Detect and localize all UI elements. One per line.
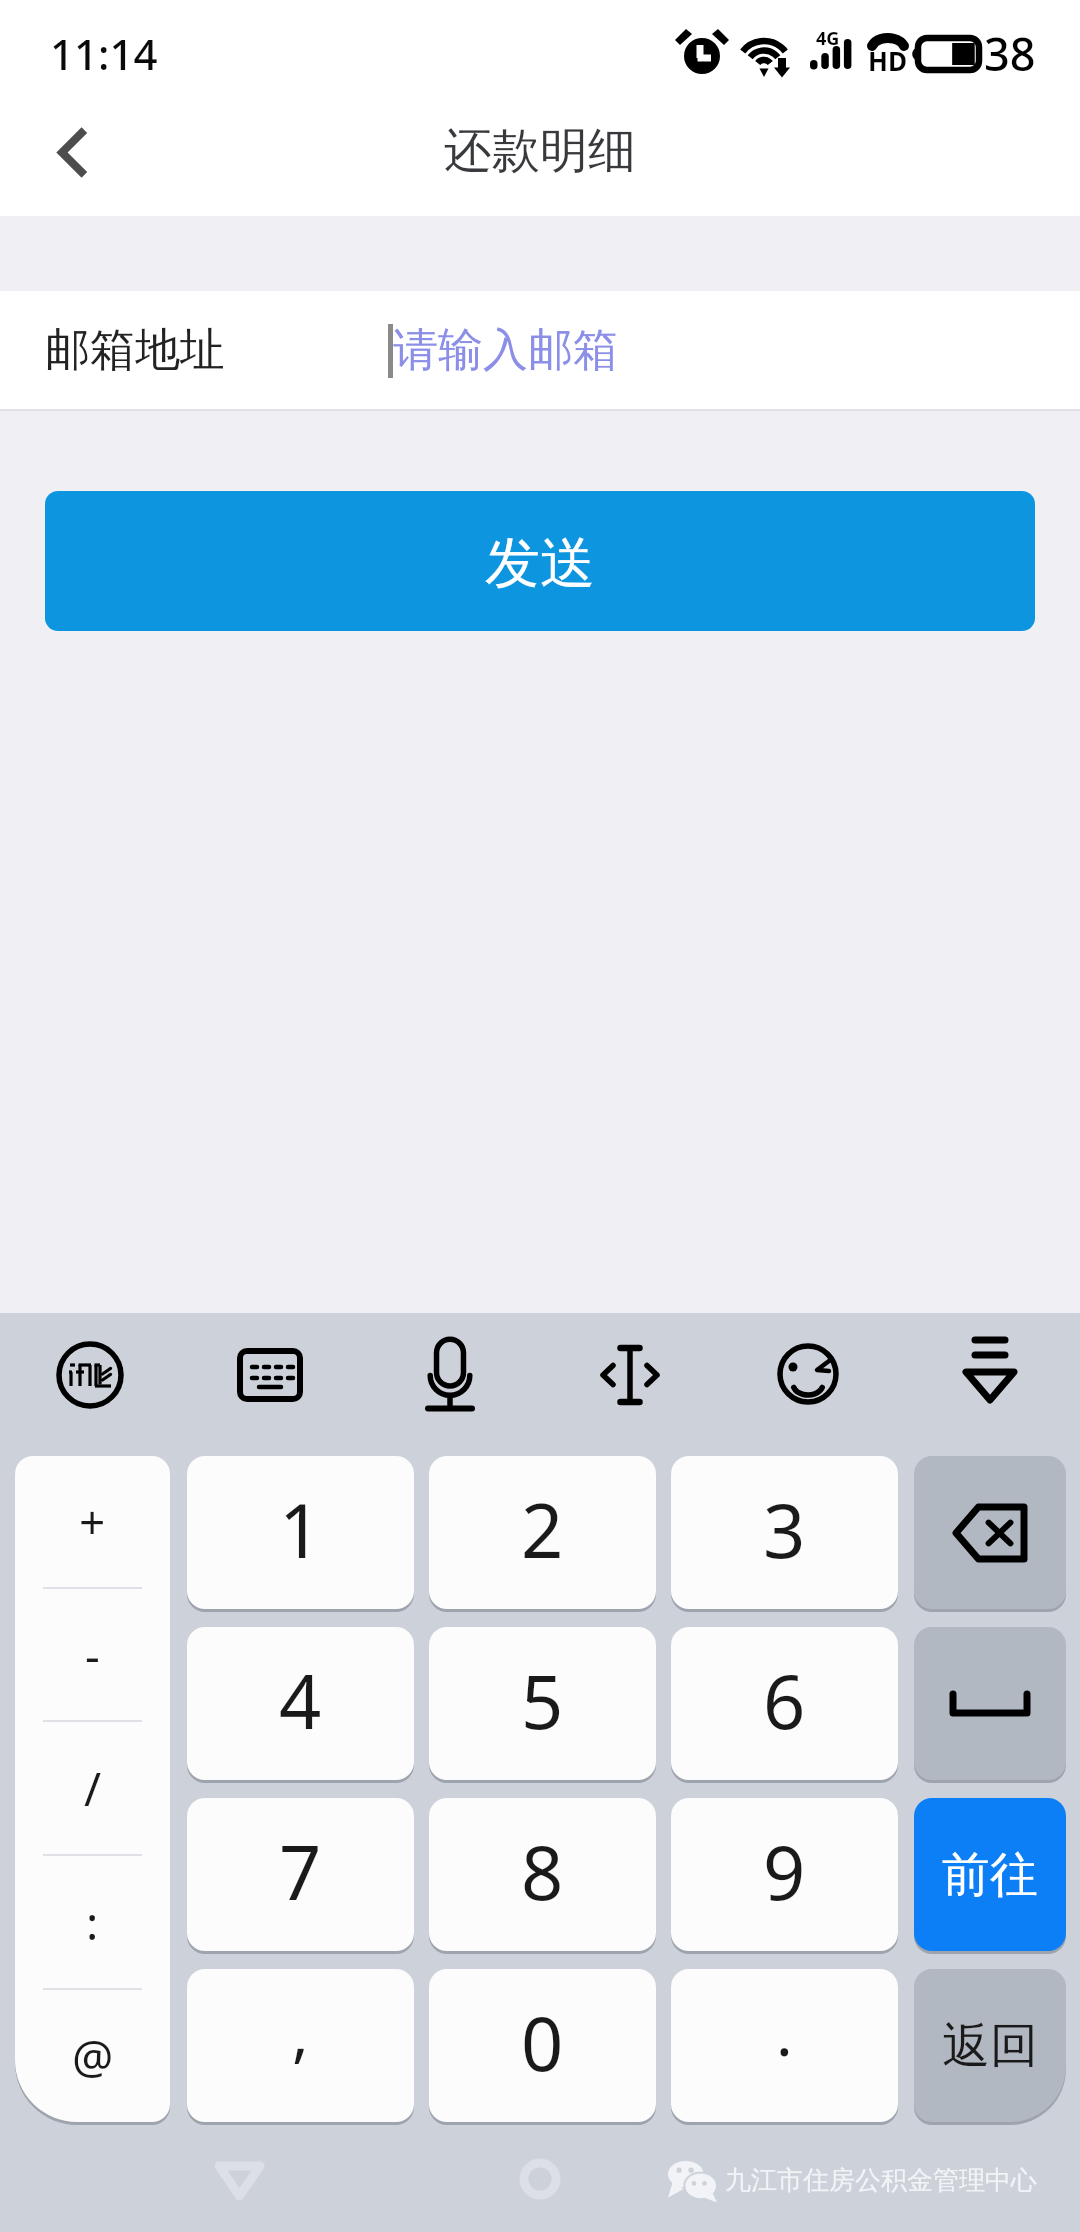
button[interactable]: 2 <box>429 1456 656 1609</box>
button[interactable]: 7 <box>187 1798 414 1951</box>
button[interactable]: + <box>15 1456 170 1587</box>
staticText: 九江市住房公积金管理中心 <box>725 2164 1037 2197</box>
button[interactable]: . <box>671 1969 898 2122</box>
button[interactable]: Hide keyboard <box>933 1320 1043 1430</box>
staticText: / <box>84 1757 102 1820</box>
button[interactable]: Move cursor <box>573 1320 683 1430</box>
button[interactable]: Back <box>18 105 130 216</box>
staticText: HD <box>868 43 907 78</box>
staticText: 7 <box>279 1821 322 1922</box>
staticText: 前往 <box>942 1845 1038 1905</box>
staticText: 3 <box>763 1479 806 1580</box>
staticText: 4 <box>279 1650 322 1751</box>
button[interactable]: Input method <box>35 1320 145 1430</box>
staticText: 11:14 <box>50 25 158 82</box>
staticText: : <box>86 1891 99 1954</box>
button[interactable]: 发送 <box>45 491 1035 631</box>
staticText: 9 <box>763 1821 806 1922</box>
staticText: 请输入邮箱 <box>393 322 618 379</box>
staticText: 6 <box>763 1650 806 1751</box>
button[interactable]: Voice input <box>395 1320 505 1430</box>
staticText: - <box>85 1623 100 1686</box>
button[interactable]: 3 <box>671 1456 898 1609</box>
staticText: 返回 <box>942 2016 1038 2076</box>
staticText: , <box>292 1990 309 2074</box>
staticText: @ <box>72 2025 114 2088</box>
button[interactable]: 4 <box>187 1627 414 1780</box>
button[interactable]: 0 <box>429 1969 656 2122</box>
staticText: . <box>776 1990 793 2074</box>
staticText: 0 <box>521 1992 564 2093</box>
staticText: 2 <box>521 1479 564 1580</box>
button[interactable]: , <box>187 1969 414 2122</box>
button[interactable]: 6 <box>671 1627 898 1780</box>
staticText: 4G <box>816 26 840 51</box>
button[interactable]: @ <box>15 1990 170 2122</box>
staticText: 38 <box>984 23 1036 84</box>
button[interactable]: - <box>15 1589 170 1720</box>
button[interactable]: 9 <box>671 1798 898 1951</box>
button[interactable]: / <box>15 1722 170 1854</box>
button[interactable]: 返回 <box>914 1969 1066 2122</box>
staticText: 5 <box>521 1650 564 1751</box>
button[interactable]: 1 <box>187 1456 414 1609</box>
staticText: 1 <box>279 1479 322 1580</box>
staticText: 8 <box>521 1821 564 1922</box>
staticText: + <box>79 1490 106 1553</box>
button[interactable]: Backspace <box>914 1456 1066 1609</box>
button[interactable]: Space <box>914 1627 1066 1780</box>
button[interactable]: 5 <box>429 1627 656 1780</box>
staticText: 邮箱地址 <box>45 322 225 379</box>
button[interactable]: : <box>15 1856 170 1988</box>
button[interactable]: Emoji <box>753 1320 863 1430</box>
button[interactable]: 8 <box>429 1798 656 1951</box>
staticText: 发送 <box>485 529 595 598</box>
button[interactable]: 前往 <box>914 1798 1066 1951</box>
button[interactable]: Keyboard <box>215 1320 325 1430</box>
staticText: 还款明细 <box>444 121 636 181</box>
